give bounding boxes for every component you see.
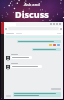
staticText: Discuss: [15, 8, 49, 20]
button[interactable]: [14, 93, 60, 96]
button[interactable]: [12, 57, 31, 58]
button[interactable]: [12, 66, 41, 67]
button[interactable]: [33, 49, 60, 50]
button[interactable]: [57, 44, 60, 46]
button[interactable]: [53, 44, 56, 46]
button[interactable]: [18, 41, 60, 42]
staticText: Ask and: [24, 2, 40, 7]
button[interactable]: [49, 44, 52, 46]
